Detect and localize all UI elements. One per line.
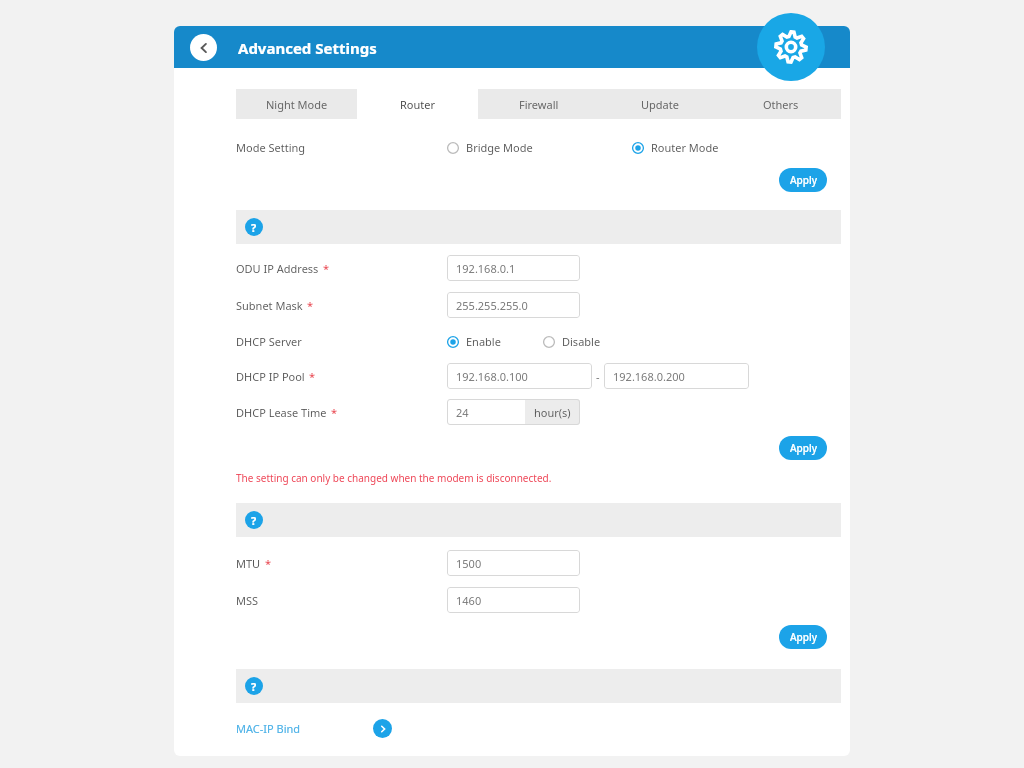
staticText: * bbox=[265, 556, 272, 571]
button[interactable]: Enable bbox=[447, 334, 501, 349]
staticText: DHCP Server bbox=[236, 334, 447, 349]
button[interactable]: Bridge Mode bbox=[447, 140, 533, 155]
button[interactable]: Firewall bbox=[478, 89, 599, 119]
staticText: DHCP IP Pool bbox=[236, 369, 305, 384]
button[interactable]: 1460 bbox=[447, 587, 580, 613]
staticText: ? bbox=[251, 513, 257, 528]
button[interactable]: 24 bbox=[447, 399, 580, 425]
button[interactable]: Settings bbox=[757, 13, 825, 81]
staticText: Update bbox=[641, 97, 679, 112]
button[interactable]: 255.255.255.0 bbox=[447, 292, 580, 318]
staticText: ODU IP Address bbox=[236, 261, 319, 276]
button[interactable]: Help bbox=[245, 677, 263, 695]
staticText: Advanced Settings bbox=[238, 38, 377, 58]
staticText: 255.255.255.0 bbox=[456, 298, 528, 313]
staticText: ? bbox=[251, 220, 257, 235]
staticText: Subnet Mask bbox=[236, 298, 303, 313]
staticText: 192.168.0.100 bbox=[456, 369, 528, 384]
staticText: hour(s) bbox=[534, 405, 571, 420]
staticText: Firewall bbox=[519, 97, 559, 112]
staticText: 192.168.0.1 bbox=[456, 261, 516, 276]
button[interactable]: MAC-IP Bind bbox=[236, 719, 392, 738]
button[interactable]: Back bbox=[190, 34, 217, 61]
staticText: * bbox=[307, 298, 314, 313]
staticText: 1500 bbox=[456, 556, 482, 571]
staticText: * bbox=[323, 261, 330, 276]
staticText: * bbox=[331, 405, 338, 420]
staticText: 192.168.0.200 bbox=[613, 369, 685, 384]
staticText: MSS bbox=[236, 593, 259, 608]
button[interactable]: 1500 bbox=[447, 550, 580, 576]
staticText: MTU bbox=[236, 556, 261, 571]
staticText: MAC-IP Bind bbox=[236, 721, 373, 736]
button[interactable]: 192.168.0.100 bbox=[447, 363, 592, 389]
button[interactable]: Disable bbox=[543, 334, 601, 349]
button[interactable]: Night Mode bbox=[236, 89, 357, 119]
button[interactable]: 192.168.0.200 bbox=[604, 363, 749, 389]
button[interactable]: 192.168.0.1 bbox=[447, 255, 580, 281]
button[interactable]: Help bbox=[245, 511, 263, 529]
staticText: Others bbox=[763, 97, 799, 112]
staticText: Apply bbox=[790, 441, 817, 455]
button[interactable]: Help bbox=[245, 218, 263, 236]
staticText: Bridge Mode bbox=[466, 140, 533, 155]
button[interactable]: Apply bbox=[779, 168, 827, 192]
staticText: * bbox=[309, 369, 316, 384]
button[interactable]: Apply bbox=[779, 436, 827, 460]
staticText: DHCP Lease Time bbox=[236, 405, 327, 420]
staticText: 1460 bbox=[456, 593, 482, 608]
staticText: Mode Setting bbox=[236, 140, 447, 155]
staticText: Night Mode bbox=[266, 97, 328, 112]
staticText: ? bbox=[251, 679, 257, 694]
staticText: Router bbox=[400, 97, 436, 112]
button[interactable]: Others bbox=[720, 89, 841, 119]
staticText: Disable bbox=[562, 334, 601, 349]
button[interactable]: Router Mode bbox=[632, 140, 719, 155]
button[interactable]: Apply bbox=[779, 625, 827, 649]
button[interactable]: Router bbox=[357, 89, 478, 119]
button[interactable]: Update bbox=[599, 89, 720, 119]
staticText: Apply bbox=[790, 630, 817, 644]
staticText: Router Mode bbox=[651, 140, 719, 155]
staticText: Apply bbox=[790, 173, 817, 187]
staticText: The setting can only be changed when the… bbox=[236, 471, 552, 485]
staticText: - bbox=[596, 369, 600, 384]
staticText: 24 bbox=[456, 405, 469, 420]
staticText: Enable bbox=[466, 334, 501, 349]
